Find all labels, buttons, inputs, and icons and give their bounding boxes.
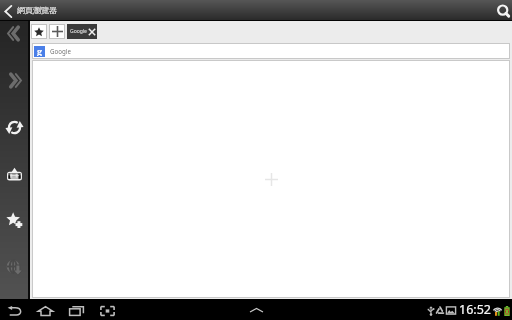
button[interactable]: Search <box>496 4 512 20</box>
staticText: 網頁瀏覽器 <box>17 5 57 15</box>
button[interactable]: g <box>32 43 510 59</box>
staticText: g <box>37 45 43 56</box>
button[interactable]: Google tab <box>67 24 97 39</box>
staticText: Google <box>50 47 71 55</box>
button[interactable]: Add bookmark <box>0 198 28 242</box>
button[interactable]: Back <box>2 3 14 19</box>
button[interactable]: New tab <box>49 24 65 39</box>
button[interactable]: Back <box>0 11 28 55</box>
button[interactable]: Forward <box>0 58 28 102</box>
staticText: 16:52 <box>459 301 491 318</box>
button[interactable]: Expand <box>246 300 266 320</box>
button[interactable]: Recents <box>67 301 85 320</box>
button[interactable]: Bookmarks <box>31 24 47 39</box>
button[interactable]: Refresh <box>0 105 28 149</box>
button[interactable]: Home <box>36 301 54 320</box>
button[interactable]: Toolbox <box>0 151 28 195</box>
staticText: Google <box>70 28 87 35</box>
button[interactable]: Back <box>5 301 23 320</box>
button[interactable]: Screenshot <box>98 301 116 320</box>
button[interactable]: Downloads <box>0 245 28 289</box>
